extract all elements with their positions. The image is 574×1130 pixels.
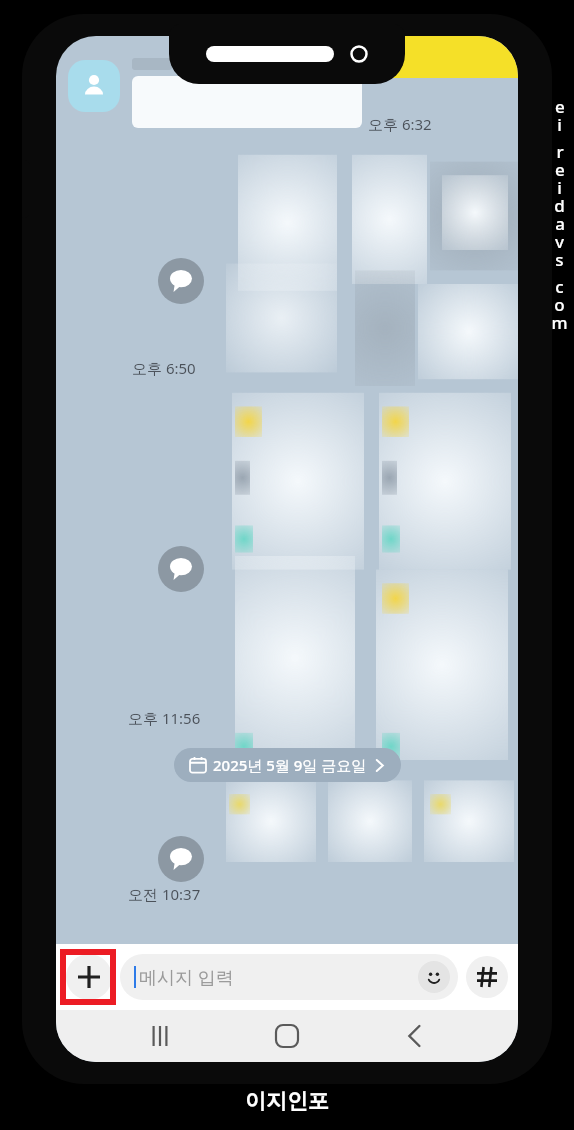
button[interactable]: 메시지 bbox=[158, 546, 204, 592]
staticText: 이지인포 bbox=[245, 1088, 329, 1114]
button[interactable]: 최근 앱 bbox=[136, 1012, 184, 1060]
staticText: 오후 6:28 bbox=[236, 36, 300, 52]
staticText: y bbox=[555, 230, 564, 248]
staticText: 오후 11:56 bbox=[128, 708, 201, 728]
staticText: s bbox=[555, 248, 564, 266]
staticText: 오후 6:50 bbox=[132, 358, 196, 378]
staticText: r bbox=[556, 140, 564, 158]
staticText: i bbox=[557, 113, 562, 131]
button[interactable]: 메시지 bbox=[158, 258, 204, 304]
button[interactable]: 추가 bbox=[66, 954, 112, 1000]
staticText: e bbox=[555, 158, 565, 176]
button[interactable] bbox=[132, 76, 362, 128]
staticText: c bbox=[555, 275, 564, 293]
button[interactable]: 메시지 bbox=[158, 836, 204, 882]
staticText: d bbox=[554, 194, 565, 212]
staticText: o bbox=[554, 293, 565, 311]
staticText: 2025년 5월 9일 금요일 bbox=[213, 755, 367, 775]
button[interactable]: 프로필 bbox=[68, 60, 120, 112]
staticText: 오전 10:37 bbox=[128, 884, 201, 904]
button[interactable]: 메시지 입력 bbox=[120, 954, 458, 1000]
button[interactable]: 홈 bbox=[263, 1012, 311, 1060]
button[interactable]: 이모티콘 bbox=[418, 961, 450, 993]
staticText: 오후 6:32 bbox=[368, 114, 432, 134]
staticText: e bbox=[555, 95, 565, 113]
button[interactable]: 2025년 5월 9일 금요일 bbox=[174, 748, 401, 782]
staticText: a bbox=[555, 212, 565, 230]
button[interactable]: 해시태그 bbox=[466, 956, 508, 998]
staticText: m bbox=[551, 311, 568, 329]
staticText: 메시지 입력 bbox=[139, 965, 234, 990]
staticText: i bbox=[557, 176, 562, 194]
button[interactable] bbox=[220, 148, 518, 828]
button[interactable]: 뒤로 bbox=[391, 1012, 439, 1060]
